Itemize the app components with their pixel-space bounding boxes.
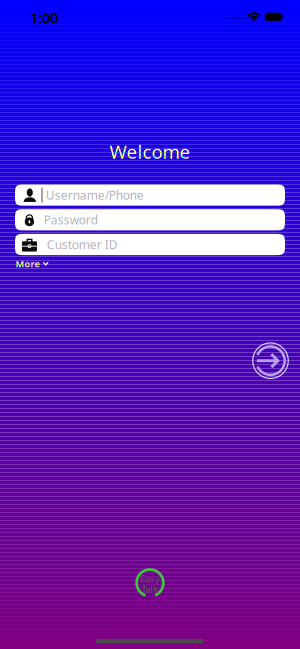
- staticText: Talk: [141, 583, 158, 595]
- staticText: Customer ID: [47, 236, 118, 252]
- staticText: Welcome: [109, 139, 190, 164]
- staticText: Easy: [140, 572, 160, 585]
- button[interactable]: Password: [15, 209, 285, 230]
- staticText: Username/Phone: [46, 187, 144, 203]
- staticText: 1:00: [30, 8, 58, 27]
- button[interactable]: Username/Phone: [15, 184, 285, 206]
- button[interactable]: Customer ID: [15, 234, 285, 255]
- staticText: More: [15, 257, 39, 270]
- staticText: Password: [44, 212, 98, 228]
- button[interactable]: Sign in: [252, 343, 288, 379]
- button[interactable]: More: [15, 255, 285, 271]
